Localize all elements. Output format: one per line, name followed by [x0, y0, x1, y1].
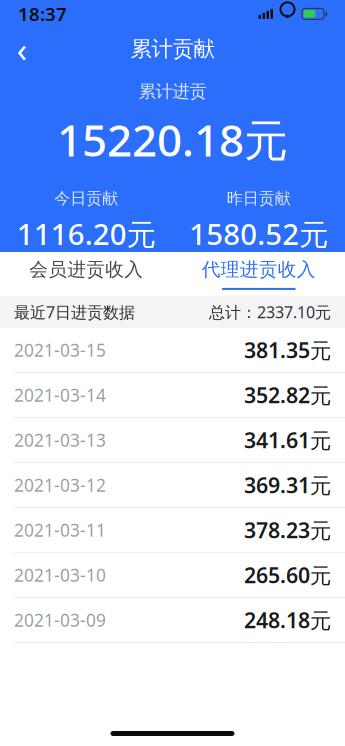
staticText: 18:37 — [18, 1, 67, 26]
staticText: 378.23元 — [244, 516, 331, 544]
staticText: 最近7日进贡数据 — [14, 301, 135, 323]
button[interactable]: Back — [0, 29, 44, 69]
staticText: 1580.52元 — [189, 214, 328, 253]
staticText: 2021-03-12 — [14, 473, 106, 496]
staticText: 381.35元 — [244, 336, 331, 364]
staticText: 累计贡献 — [130, 36, 214, 62]
staticText: ‹ — [16, 26, 27, 72]
staticText: 15220.18元 — [57, 110, 288, 168]
staticText: 369.31元 — [244, 471, 331, 499]
staticText: 265.60元 — [244, 561, 331, 589]
staticText: 今日贡献 — [54, 189, 118, 208]
button[interactable]: 代理进贡收入 — [172, 250, 345, 298]
button[interactable]: 会员进贡收入 — [0, 250, 172, 298]
staticText: 总计：2337.10元 — [209, 301, 331, 323]
staticText: 2021-03-10 — [14, 563, 106, 586]
staticText: 2021-03-11 — [14, 518, 106, 541]
staticText: 2021-03-15 — [14, 338, 106, 361]
staticText: 2021-03-13 — [14, 428, 106, 451]
staticText: 代理进贡收入 — [202, 258, 316, 281]
staticText: 2021-03-09 — [14, 608, 106, 631]
staticText: 累计进贡 — [138, 81, 206, 102]
staticText: 2021-03-14 — [14, 383, 106, 406]
staticText: 341.61元 — [244, 426, 331, 454]
staticText: 248.18元 — [244, 606, 331, 634]
staticText: 1116.20元 — [17, 214, 156, 253]
staticText: 352.82元 — [244, 381, 331, 409]
staticText: 会员进贡收入 — [29, 258, 143, 281]
staticText: 昨日贡献 — [227, 189, 291, 208]
